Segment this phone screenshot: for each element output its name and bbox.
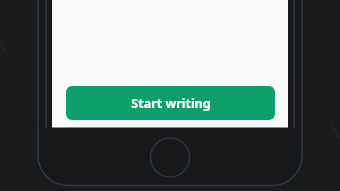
button[interactable]: Start writing [66,86,275,120]
staticText: Start writing [131,95,211,112]
